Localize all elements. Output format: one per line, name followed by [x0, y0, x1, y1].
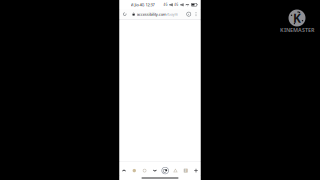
button[interactable]: Tab switcher — [181, 165, 190, 177]
button[interactable]: Forward — [151, 165, 159, 177]
button[interactable]: History — [140, 165, 149, 177]
staticText: KINEMASTER — [280, 26, 314, 34]
button[interactable]: Back — [120, 165, 128, 177]
button[interactable]: More options — [193, 9, 199, 19]
staticText: 4G — [174, 3, 178, 6]
button[interactable]: Page information — [184, 9, 193, 19]
button[interactable]: Bookmarks — [171, 165, 180, 177]
button[interactable]: accessibility.com — [132, 9, 178, 19]
button[interactable]: New tab — [192, 165, 200, 177]
staticText: K — [293, 10, 301, 26]
staticText: Vi Jio 4G 12:37 — [130, 2, 154, 7]
button[interactable]: Reload page — [120, 9, 129, 19]
staticText: 4G — [163, 3, 167, 6]
button[interactable]: Lens — [161, 165, 169, 177]
button[interactable]: Home — [130, 165, 139, 177]
staticText: accessibility.com — [137, 11, 167, 17]
staticText: 3 — [185, 169, 187, 172]
staticText: /GoyVi — [167, 11, 178, 17]
